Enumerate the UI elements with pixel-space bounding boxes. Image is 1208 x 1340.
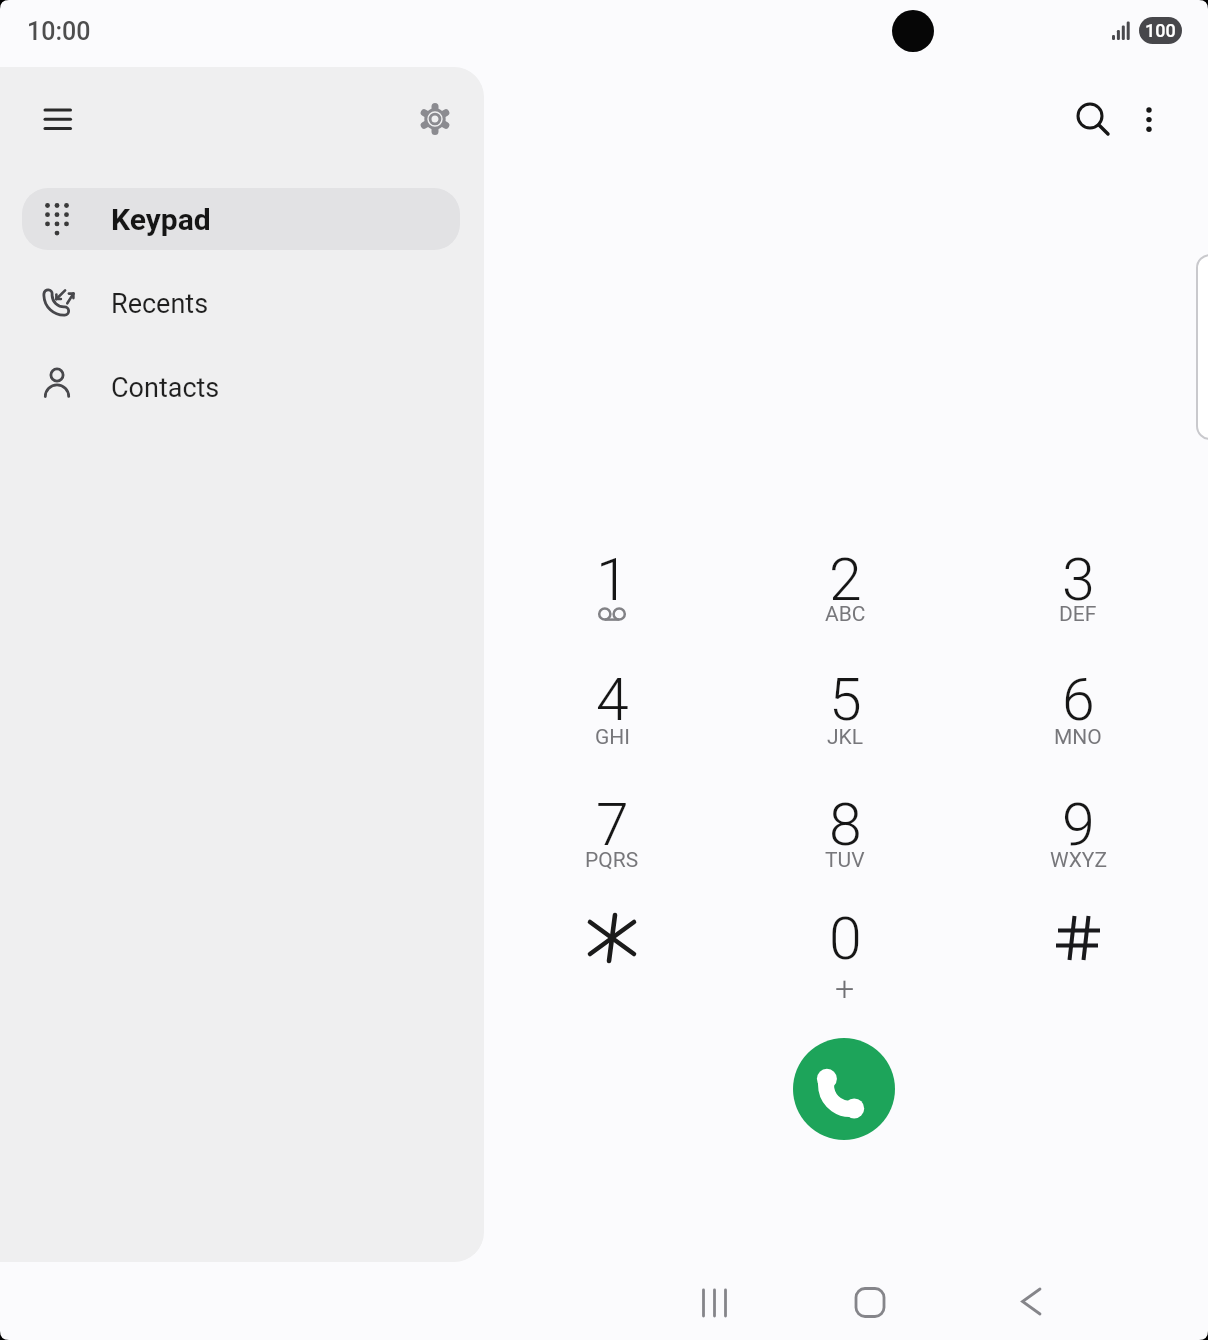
staticText: Keypad <box>111 202 211 237</box>
button[interactable]: 0 <box>775 878 915 998</box>
button[interactable]: 7 <box>542 764 682 884</box>
staticText: MNO <box>1054 725 1102 750</box>
button[interactable]: 4 <box>542 639 682 759</box>
staticText: 1 <box>596 545 629 614</box>
button[interactable] <box>1125 93 1173 141</box>
button[interactable] <box>542 878 682 998</box>
button[interactable]: 2 <box>775 519 915 639</box>
staticText: 6 <box>1062 665 1095 734</box>
button[interactable] <box>1067 93 1115 141</box>
staticText: 5 <box>829 665 862 734</box>
button[interactable]: 5 <box>775 639 915 759</box>
staticText: 10:00 <box>27 17 91 46</box>
button[interactable]: Recents <box>22 271 460 337</box>
staticText: GHI <box>595 725 630 750</box>
button[interactable]: Keypad <box>22 188 460 250</box>
button[interactable]: 1 <box>542 519 682 639</box>
button[interactable] <box>793 1038 895 1140</box>
staticText: TUV <box>825 848 865 873</box>
staticText: PQRS <box>585 848 639 873</box>
button[interactable]: Contacts <box>22 354 460 421</box>
button[interactable] <box>686 1275 742 1331</box>
button[interactable] <box>33 95 81 143</box>
staticText: 4 <box>596 665 629 734</box>
staticText: 9 <box>1062 790 1095 859</box>
button[interactable]: 9 <box>1008 764 1148 884</box>
staticText: + <box>835 968 855 998</box>
staticText: JKL <box>827 725 864 750</box>
staticText: 2 <box>829 545 862 614</box>
button[interactable]: 3 <box>1008 519 1148 639</box>
staticText: 8 <box>829 790 862 859</box>
staticText: 3 <box>1062 545 1095 614</box>
button[interactable]: 6 <box>1008 639 1148 759</box>
staticText: ABC <box>825 602 866 627</box>
button[interactable] <box>842 1275 898 1331</box>
staticText: WXYZ <box>1050 848 1107 873</box>
button[interactable]: 8 <box>775 764 915 884</box>
button[interactable] <box>411 96 459 144</box>
button[interactable] <box>1008 878 1148 998</box>
staticText: DEF <box>1059 602 1097 627</box>
staticText: 100 <box>1145 20 1176 41</box>
button[interactable] <box>1003 1275 1059 1331</box>
staticText: 0 <box>829 904 862 973</box>
staticText: 7 <box>596 790 629 859</box>
staticText: Recents <box>111 288 209 320</box>
staticText: Contacts <box>111 372 220 404</box>
